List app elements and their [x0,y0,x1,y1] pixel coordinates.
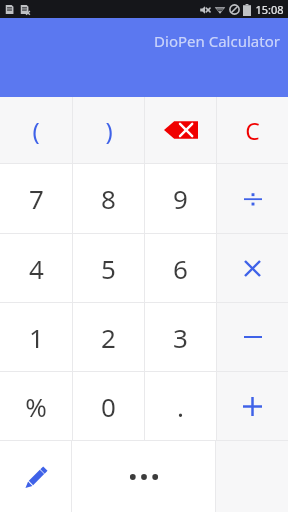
button[interactable] [217,234,288,302]
staticText: 1 [29,320,44,355]
staticText: DioPen Calculator [154,31,280,51]
button[interactable]: 3 [145,303,216,371]
staticText: 5 [101,251,116,286]
button[interactable] [217,372,288,440]
button[interactable]: 8 [73,164,144,233]
staticText: 3 [173,320,188,355]
button[interactable]: Backspace [145,97,216,163]
button[interactable] [217,303,288,371]
button[interactable] [217,164,288,233]
staticText: C [245,115,260,146]
button[interactable]: 1 [0,303,72,371]
staticText: 15:08 [255,2,284,17]
button[interactable]: 5 [73,234,144,302]
staticText: ( [32,114,40,147]
button[interactable]: 9 [145,164,216,233]
staticText: ) [105,114,113,147]
staticText: 6 [173,251,188,286]
button[interactable]: 6 [145,234,216,302]
staticText: 0 [101,389,116,424]
button[interactable]: Edit [0,441,71,512]
staticText: 9 [173,181,188,216]
staticText: . [177,389,184,424]
button[interactable]: C [217,97,288,163]
staticText: 4 [29,251,44,286]
staticText: 2 [101,320,116,355]
button[interactable] [72,441,215,512]
button[interactable]: ( [0,97,72,163]
button[interactable]: ) [73,97,144,163]
button[interactable]: 0 [73,372,144,440]
staticText: 8 [101,181,116,216]
button[interactable]: . [145,372,216,440]
button[interactable]: 2 [73,303,144,371]
button[interactable]: 4 [0,234,72,302]
staticText: % [25,389,47,424]
button[interactable]: % [0,372,72,440]
button[interactable]: 7 [0,164,72,233]
staticText: 7 [29,181,44,216]
